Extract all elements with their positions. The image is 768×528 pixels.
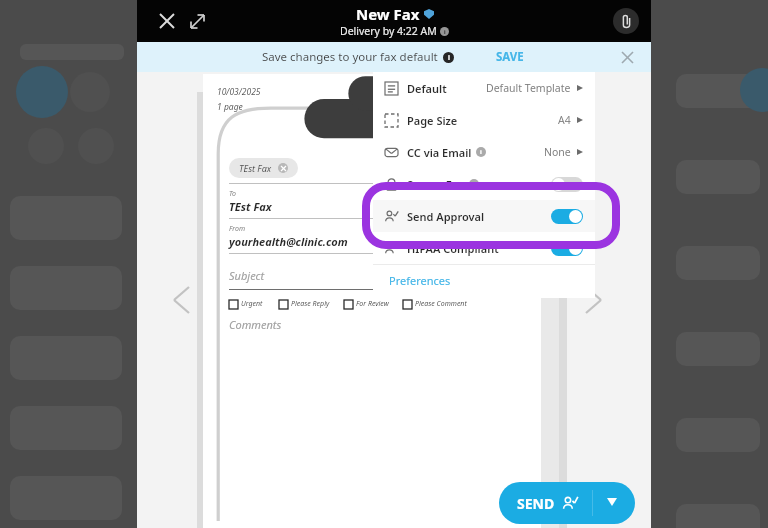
staticText: i — [448, 53, 450, 62]
staticText: i — [444, 28, 446, 35]
button[interactable]: Please Reply — [279, 299, 330, 309]
staticText: A4 — [558, 113, 571, 127]
button[interactable]: Page Size — [373, 104, 595, 136]
staticText: i — [480, 148, 482, 156]
staticText: SAVE — [496, 49, 524, 65]
staticText: TEst Fax — [239, 162, 272, 174]
staticText: Please Reply — [291, 299, 330, 309]
button[interactable]: TEst Fax — [229, 158, 298, 178]
staticText: Please Comment — [415, 299, 467, 309]
staticText: Urgent — [241, 299, 263, 309]
staticText: Delivery by 4:22 AM — [340, 24, 437, 38]
staticText: 1 page — [217, 101, 243, 113]
staticText: TEst Fax — [229, 199, 272, 214]
button[interactable]: Please Comment — [403, 299, 467, 309]
button[interactable]: Previous page — [161, 280, 201, 320]
staticText: New Fax — [356, 4, 420, 24]
staticText: To — [229, 189, 236, 199]
button[interactable]: Send Approval — [373, 200, 595, 232]
button[interactable]: Attach file — [613, 8, 639, 34]
button[interactable]: HIPAA Compliant — [373, 232, 595, 264]
staticText: Send Approval — [407, 209, 485, 224]
button[interactable]: Close — [149, 3, 185, 39]
staticText: Page Size — [407, 113, 458, 128]
button[interactable]: SAVE — [494, 47, 526, 67]
button[interactable]: Urgent — [229, 299, 263, 309]
button[interactable]: Expand — [179, 3, 215, 39]
staticText: 10/03/2025 — [217, 86, 261, 98]
button[interactable]: Preferences — [373, 265, 595, 296]
button[interactable]: For Review — [344, 299, 389, 309]
button[interactable]: Default — [373, 72, 595, 104]
staticText: Preferences — [389, 273, 451, 288]
button[interactable]: Secure Fax — [373, 168, 595, 200]
staticText: From — [229, 224, 246, 234]
staticText: Default — [407, 81, 447, 96]
staticText: HIPAA Compliant — [407, 241, 499, 256]
staticText: Save changes to your fax default — [262, 49, 438, 65]
staticText: Default Template — [486, 81, 571, 95]
staticText: CC via Email — [407, 145, 472, 160]
button[interactable]: Dismiss — [615, 45, 639, 69]
staticText: Secure Fax — [407, 177, 465, 192]
staticText: F — [430, 114, 454, 171]
staticText: Comments — [229, 317, 282, 332]
staticText: For Review — [356, 299, 389, 309]
staticText: SEND — [517, 494, 555, 513]
button[interactable]: CC via Email — [373, 136, 595, 168]
staticText: None — [544, 145, 571, 159]
staticText: Subject — [229, 268, 265, 283]
staticText: yourhealth@clinic.com — [229, 234, 348, 249]
button[interactable]: SEND — [499, 482, 635, 524]
staticText: i — [473, 180, 475, 188]
button[interactable]: Next page — [573, 280, 613, 320]
